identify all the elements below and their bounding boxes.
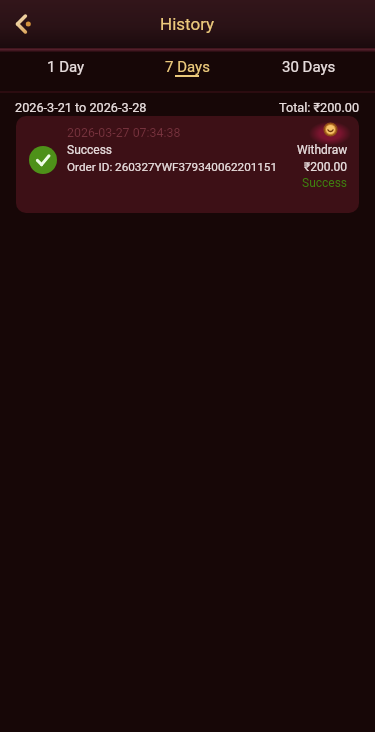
button[interactable]: 30 Days: [248, 52, 370, 91]
staticText: 30 Days: [282, 58, 336, 76]
button[interactable]: Back: [5, 6, 41, 42]
button[interactable]: 7 Days: [126, 52, 248, 91]
staticText: Order ID: 260327YWF379340062201151: [67, 160, 278, 174]
staticText: Success: [67, 143, 113, 157]
staticText: Total: ₹200.00: [279, 100, 360, 115]
button[interactable]: 1 Day: [5, 52, 126, 91]
button[interactable]: 2026-03-27 07:34:38: [16, 116, 359, 213]
staticText: ₹200.00: [304, 160, 348, 174]
staticText: 2026-03-27 07:34:38: [67, 125, 181, 140]
staticText: 1 Day: [47, 58, 85, 76]
staticText: 2026-3-21 to 2026-3-28: [15, 100, 147, 115]
staticText: History: [160, 14, 215, 34]
staticText: Withdraw: [297, 143, 348, 157]
staticText: Success: [302, 176, 348, 190]
staticText: 7 Days: [165, 58, 210, 76]
